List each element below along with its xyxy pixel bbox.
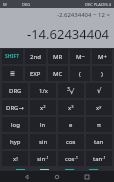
staticText: ln bbox=[40, 121, 46, 129]
staticText: π bbox=[97, 121, 101, 129]
button[interactable]: DRG bbox=[2, 83, 28, 98]
staticText: cos bbox=[66, 138, 76, 146]
button[interactable]: log bbox=[2, 117, 28, 132]
button[interactable]: SHIFT bbox=[2, 49, 23, 64]
staticText: M− bbox=[76, 53, 85, 61]
staticText: ) bbox=[101, 70, 103, 78]
staticText: x3 bbox=[68, 104, 74, 112]
staticText: x2 bbox=[40, 104, 46, 112]
button[interactable]: Menu bbox=[2, 66, 23, 81]
button[interactable]: 1/x bbox=[30, 83, 56, 98]
staticText: tan bbox=[94, 138, 104, 146]
staticText: -2.62434404 − 12 = bbox=[57, 11, 110, 19]
button[interactable]: xy bbox=[86, 100, 112, 115]
button[interactable]: 2nd bbox=[25, 49, 46, 64]
button[interactable]: sin-1 bbox=[30, 151, 56, 166]
staticText: ( bbox=[79, 70, 81, 78]
button[interactable]: Home bbox=[52, 172, 62, 182]
button[interactable]: π bbox=[86, 117, 112, 132]
button[interactable]: Back bbox=[22, 172, 32, 182]
button[interactable]: x2 bbox=[30, 100, 56, 115]
staticText: e bbox=[69, 121, 73, 129]
staticText: tan-1 bbox=[93, 155, 106, 163]
staticText: DEG bbox=[22, 2, 31, 7]
staticText: M bbox=[3, 2, 7, 7]
staticText: cos-1 bbox=[65, 155, 78, 163]
button[interactable]: MC bbox=[48, 66, 68, 81]
button[interactable]: sin bbox=[30, 134, 56, 149]
staticText: DRG bbox=[9, 87, 22, 95]
staticText: log bbox=[11, 121, 20, 129]
button[interactable]: cos bbox=[58, 134, 84, 149]
button[interactable]: ln bbox=[30, 117, 56, 132]
button[interactable]: √ bbox=[86, 83, 112, 98]
staticText: sin bbox=[39, 138, 48, 146]
staticText: M+ bbox=[98, 53, 107, 61]
button[interactable]: EXP bbox=[25, 66, 46, 81]
staticText: 1/x bbox=[39, 87, 48, 95]
button[interactable]: 3√ bbox=[58, 83, 84, 98]
staticText: √ bbox=[97, 87, 102, 95]
staticText: MC bbox=[53, 70, 63, 78]
staticText: -14.62434404 bbox=[27, 25, 110, 43]
staticText: xy bbox=[96, 104, 102, 112]
staticText: DEC PLACES 4 bbox=[85, 2, 111, 7]
button[interactable]: hyp bbox=[2, 134, 28, 149]
staticText: MR bbox=[53, 53, 63, 61]
button[interactable]: M− bbox=[70, 49, 90, 64]
button[interactable]: cos-1 bbox=[58, 151, 84, 166]
staticText: EXP bbox=[30, 70, 41, 78]
button[interactable]: DRG→ bbox=[2, 100, 28, 115]
staticText: DRG→ bbox=[6, 104, 24, 112]
staticText: hyp bbox=[10, 138, 21, 146]
button[interactable]: x! bbox=[2, 151, 28, 166]
button[interactable]: tan-1 bbox=[86, 151, 112, 166]
staticText: 2nd bbox=[30, 53, 41, 61]
staticText: sin-1 bbox=[37, 155, 49, 163]
staticText: x! bbox=[13, 155, 18, 163]
button[interactable]: ) bbox=[92, 66, 112, 81]
button[interactable]: Recent apps bbox=[82, 172, 92, 182]
button[interactable]: tan bbox=[86, 134, 112, 149]
button[interactable]: MR bbox=[48, 49, 68, 64]
staticText: SHIFT bbox=[5, 53, 20, 60]
button[interactable]: x3 bbox=[58, 100, 84, 115]
button[interactable]: M+ bbox=[92, 49, 112, 64]
button[interactable]: ( bbox=[70, 66, 90, 81]
staticText: 3√ bbox=[67, 86, 75, 95]
button[interactable]: e bbox=[58, 117, 84, 132]
